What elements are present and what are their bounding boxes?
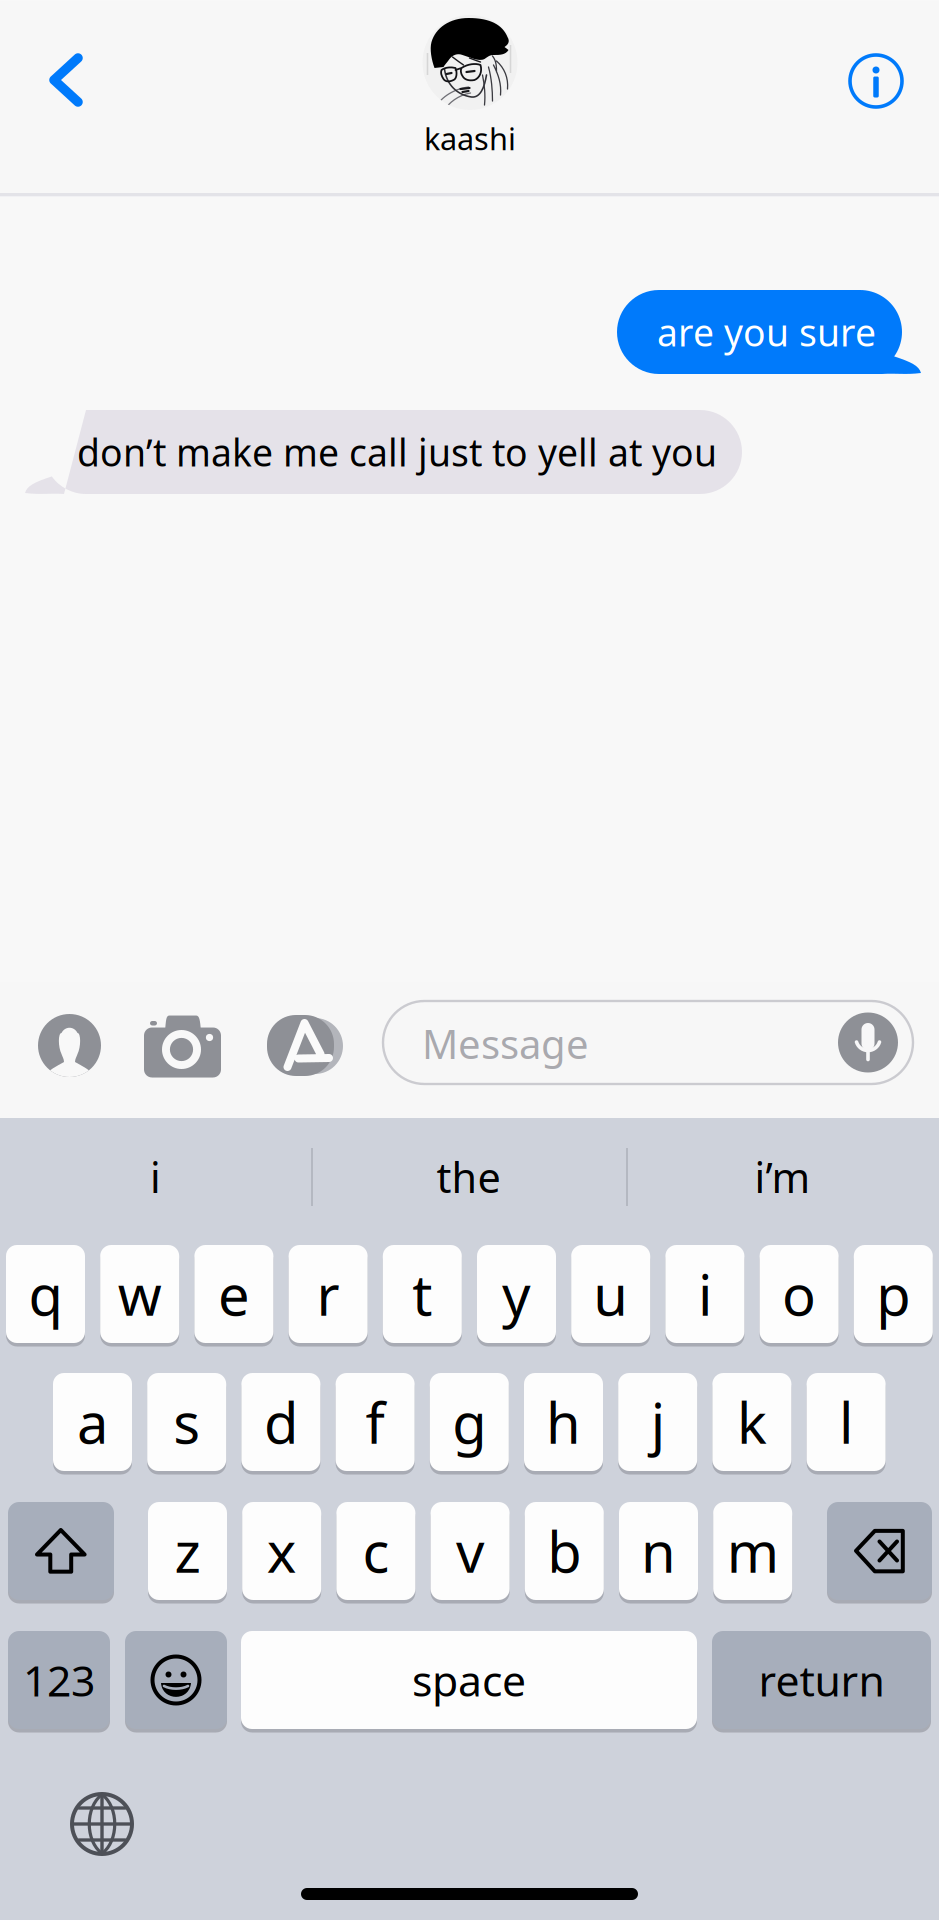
button[interactable]: Camera <box>144 1015 234 1111</box>
button[interactable]: i’m <box>626 1134 939 1220</box>
staticText: q <box>28 1257 62 1331</box>
button[interactable]: Delete <box>827 1502 932 1604</box>
button[interactable]: p <box>854 1245 933 1347</box>
button[interactable]: i <box>665 1245 744 1347</box>
button[interactable]: g <box>430 1373 509 1475</box>
button[interactable]: n <box>619 1502 698 1604</box>
button[interactable]: kaashi <box>360 15 580 159</box>
button[interactable]: return <box>712 1631 931 1733</box>
staticText: i <box>150 1150 161 1204</box>
staticText: f <box>366 1385 385 1459</box>
staticText: z <box>174 1514 200 1588</box>
button[interactable]: b <box>525 1502 604 1604</box>
button[interactable]: space <box>241 1631 697 1733</box>
staticText: don’t make me call just to yell at you <box>77 427 717 477</box>
staticText: y <box>502 1257 531 1331</box>
button[interactable]: w <box>100 1245 179 1347</box>
button[interactable]: the <box>311 1134 626 1220</box>
staticText: are you sure <box>657 307 876 357</box>
button[interactable]: Apps <box>267 1015 357 1111</box>
staticText: Message <box>422 1017 589 1070</box>
staticText: e <box>218 1257 250 1331</box>
staticText: the <box>436 1150 500 1204</box>
button[interactable]: Back <box>18 25 114 135</box>
staticText: o <box>782 1257 816 1331</box>
button[interactable]: Next keyboard <box>57 1779 147 1869</box>
staticText: h <box>546 1385 581 1459</box>
button[interactable]: a <box>53 1373 132 1475</box>
button[interactable]: e <box>194 1245 273 1347</box>
staticText: m <box>727 1514 779 1588</box>
button[interactable]: j <box>618 1373 697 1475</box>
button[interactable]: c <box>336 1502 415 1604</box>
staticText: t <box>412 1257 432 1331</box>
button[interactable]: t <box>383 1245 462 1347</box>
staticText: r <box>317 1257 340 1331</box>
staticText: x <box>267 1514 297 1588</box>
button[interactable]: Emoji <box>125 1631 227 1733</box>
button[interactable]: l <box>807 1373 886 1475</box>
staticText: space <box>412 1652 526 1708</box>
button[interactable]: o <box>760 1245 839 1347</box>
staticText: i’m <box>754 1150 810 1204</box>
staticText: s <box>173 1385 200 1459</box>
button[interactable]: u <box>571 1245 650 1347</box>
staticText: d <box>264 1385 298 1459</box>
button[interactable]: i <box>0 1134 311 1220</box>
staticText: kaashi <box>424 118 516 159</box>
button[interactable]: y <box>477 1245 556 1347</box>
staticText: l <box>839 1385 853 1459</box>
button[interactable]: f <box>336 1373 415 1475</box>
staticText: n <box>641 1514 676 1588</box>
staticText: v <box>456 1514 484 1588</box>
staticText: b <box>547 1514 581 1588</box>
button[interactable]: s <box>147 1373 226 1475</box>
staticText: k <box>737 1385 767 1459</box>
staticText: a <box>77 1385 108 1459</box>
staticText: c <box>362 1514 389 1588</box>
button[interactable]: h <box>524 1373 603 1475</box>
staticText: w <box>118 1257 162 1331</box>
button[interactable]: m <box>713 1502 792 1604</box>
button[interactable]: Contacts <box>38 1014 122 1110</box>
button[interactable]: k <box>712 1373 791 1475</box>
button[interactable]: r <box>289 1245 368 1347</box>
button[interactable]: Shift <box>8 1502 114 1604</box>
button[interactable]: z <box>148 1502 227 1604</box>
button[interactable]: x <box>242 1502 321 1604</box>
button[interactable]: v <box>431 1502 510 1604</box>
staticText: i <box>698 1257 712 1331</box>
staticText: 123 <box>23 1652 95 1708</box>
staticText: u <box>593 1257 628 1331</box>
button[interactable]: d <box>241 1373 320 1475</box>
staticText: p <box>876 1257 910 1331</box>
button[interactable]: Details <box>828 26 924 136</box>
staticText: return <box>758 1652 884 1708</box>
button[interactable]: Message <box>383 1001 913 1084</box>
staticText: j <box>651 1385 665 1459</box>
button[interactable]: 123 <box>8 1631 110 1733</box>
button[interactable]: q <box>6 1245 85 1347</box>
staticText: g <box>452 1385 486 1459</box>
